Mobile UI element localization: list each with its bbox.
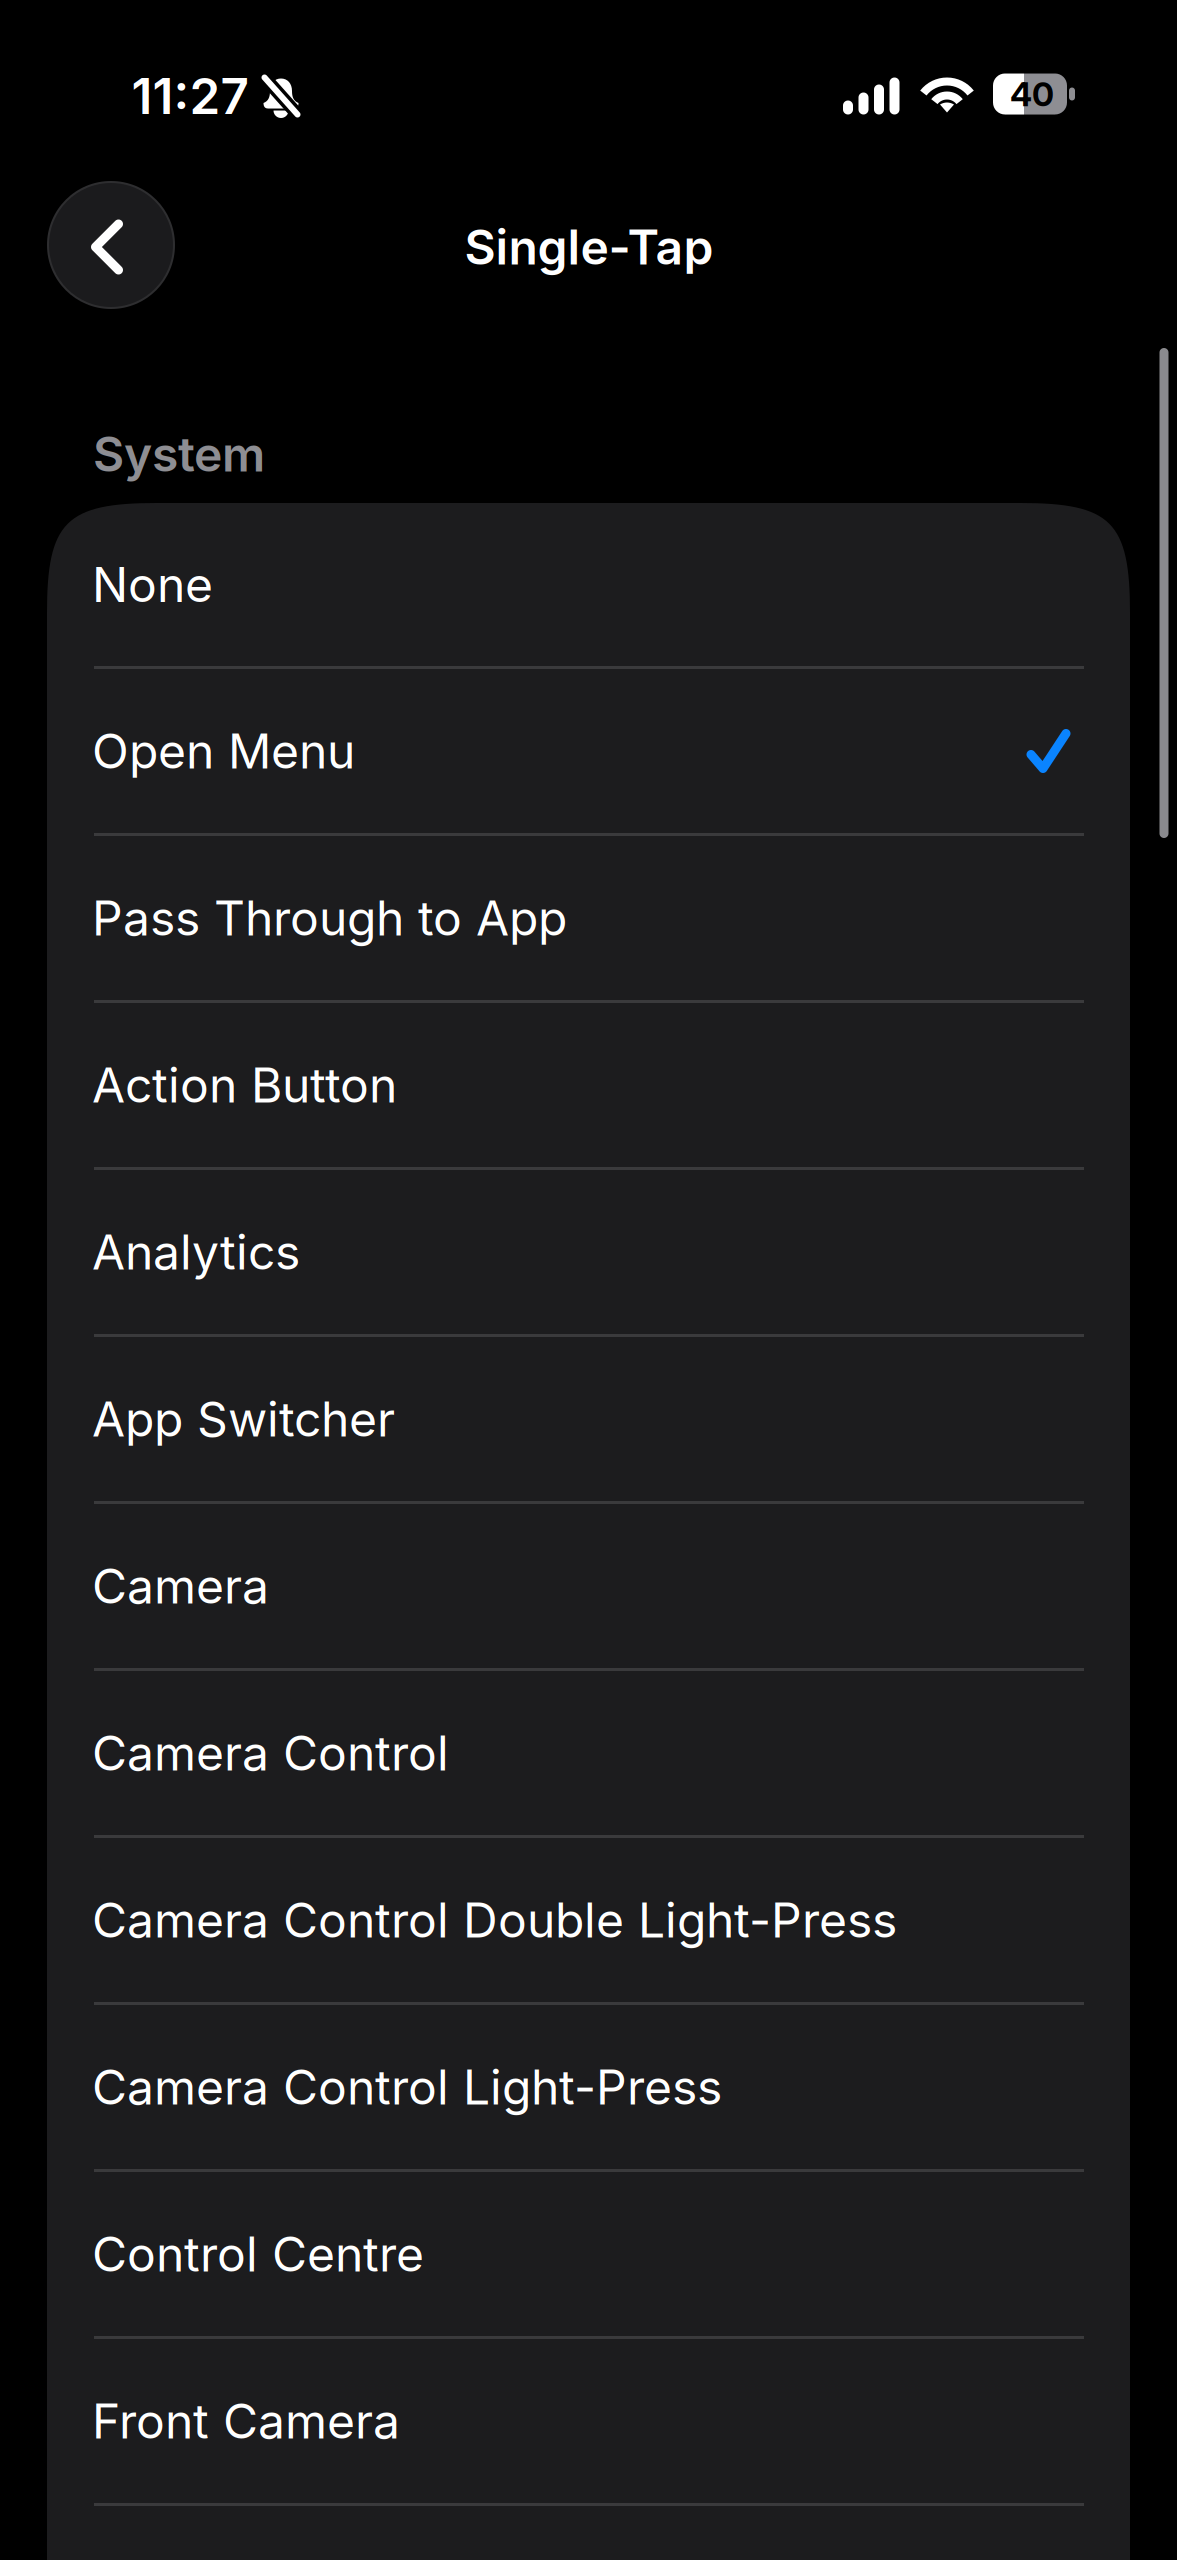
button[interactable]: Pass Through to App [47, 836, 1130, 1000]
staticText: None [92, 555, 213, 614]
staticText: 40 [1010, 74, 1054, 114]
staticText: Front Camera [92, 2392, 400, 2450]
staticText: 11:27 [131, 66, 248, 126]
button[interactable]: Analytics [47, 1170, 1130, 1334]
staticText: Analytics [92, 1223, 300, 1281]
button[interactable]: Camera Control [47, 1671, 1130, 1835]
button[interactable]: Open Menu [47, 669, 1130, 833]
button[interactable]: Camera [47, 1504, 1130, 1668]
staticText: Open Menu [92, 722, 355, 780]
staticText: App Switcher [92, 1390, 395, 1448]
button[interactable]: Control Centre [47, 2172, 1130, 2336]
staticText: Camera Control [92, 1724, 449, 1782]
staticText: Action Button [92, 1056, 397, 1114]
button[interactable]: App Switcher [47, 1337, 1130, 1501]
staticText: Pass Through to App [92, 889, 567, 947]
button[interactable]: Camera Control Double Light-Press [47, 1838, 1130, 2002]
button[interactable]: Camera Control Light-Press [47, 2005, 1130, 2169]
button[interactable]: Back [47, 181, 175, 309]
staticText: System [93, 425, 265, 483]
staticText: Camera [92, 1557, 269, 1615]
staticText: Camera Control Double Light-Press [92, 1891, 897, 1949]
button[interactable]: Action Button [47, 1003, 1130, 1167]
staticText: Single-Tap [464, 218, 713, 276]
staticText: Control Centre [92, 2225, 424, 2283]
button[interactable]: None [47, 503, 1130, 666]
staticText: Camera Control Light-Press [92, 2058, 722, 2116]
button[interactable]: Front Camera [47, 2339, 1130, 2503]
